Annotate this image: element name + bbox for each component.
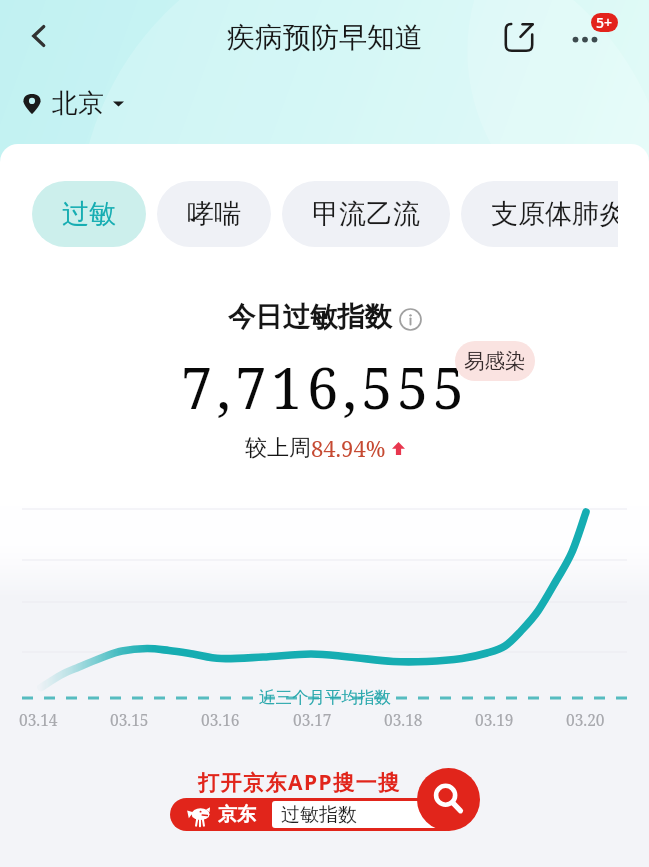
staticText: 今日过敏指数 [228,300,392,334]
staticText: 近三个月平均指数 [259,687,391,708]
button[interactable]: 过敏指数 [170,798,462,831]
staticText: 5+ [596,13,613,32]
staticText: 哮喘 [187,197,241,231]
button[interactable]: More options [562,13,608,59]
button[interactable]: 北京 [21,87,124,120]
button[interactable]: 甲流乙流 [282,181,450,247]
staticText: 03.15 [110,709,149,730]
staticText: 03.14 [19,709,58,730]
staticText: 过敏 [62,197,116,231]
staticText: 打开京东APP搜一搜 [198,768,401,797]
button[interactable]: Info [399,308,422,331]
staticText: 支原体肺炎 [491,197,618,231]
staticText: 北京 [52,87,104,120]
staticText: 京东 [218,803,256,827]
staticText: 易感染 [464,348,526,374]
staticText: 03.17 [293,709,332,730]
button[interactable]: Search [417,768,480,831]
button[interactable]: 支原体肺炎 [461,181,618,247]
staticText: 7,716,555 [181,349,469,425]
staticText: 03.16 [201,709,240,730]
staticText: 较上周 [245,434,311,462]
button[interactable]: 过敏 [32,181,146,247]
button[interactable]: 哮喘 [157,181,271,247]
staticText: 疾病预防早知道 [227,20,423,55]
button[interactable]: Share [496,13,542,59]
staticText: 03.18 [384,709,423,730]
button[interactable]: Back [16,13,62,59]
button[interactable]: 易感染 [455,341,535,381]
staticText: 甲流乙流 [312,197,420,231]
staticText: 03.19 [475,709,514,730]
staticText: 84.94% [311,433,386,463]
staticText: 03.20 [566,709,605,730]
staticText: 过敏指数 [281,803,357,827]
